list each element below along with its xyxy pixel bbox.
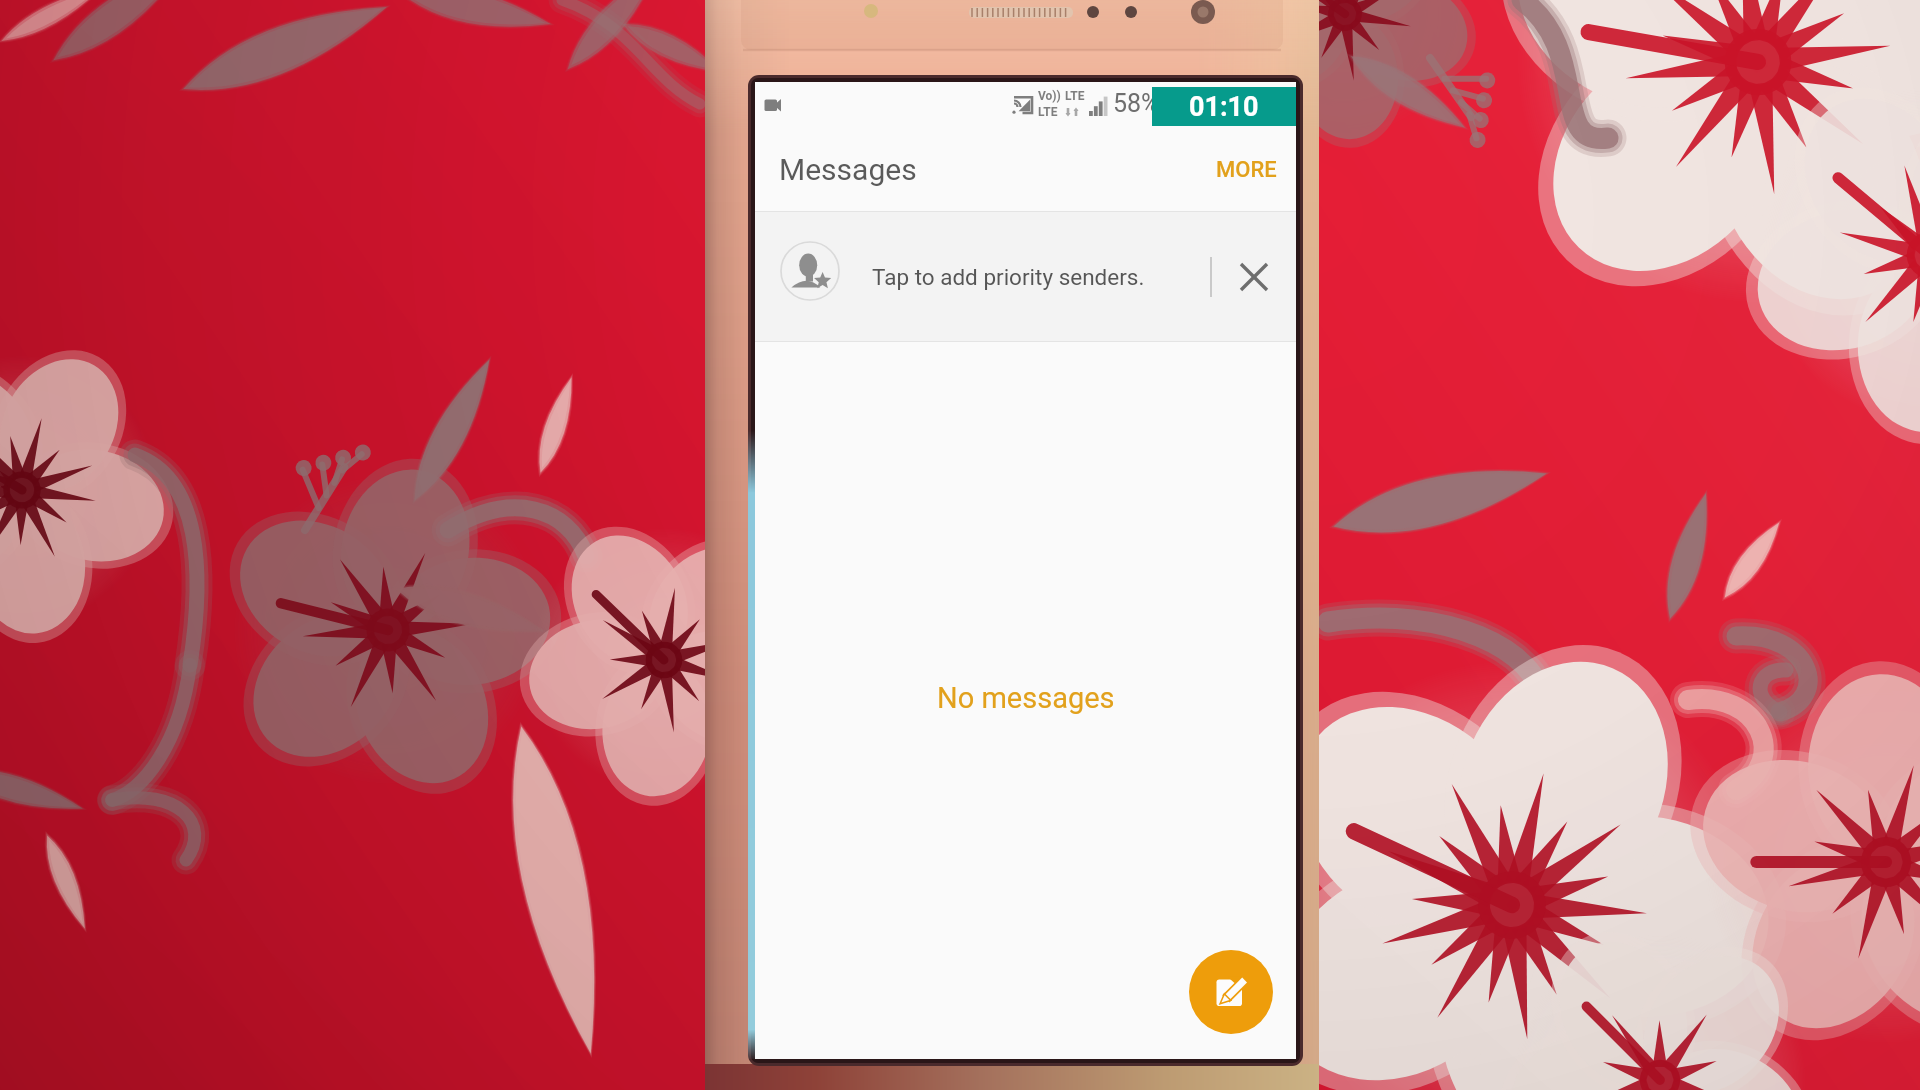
staticText: 58% <box>1113 89 1160 118</box>
staticText: Tap to add priority senders. <box>872 264 1145 290</box>
staticText: Messages <box>779 152 917 187</box>
staticText: Vo)) <box>1038 89 1061 103</box>
staticText: 01:10 <box>1189 91 1259 123</box>
button[interactable]: Dismiss <box>1212 212 1296 341</box>
staticText: LTE <box>1038 105 1058 119</box>
staticText: LTE <box>1065 89 1085 103</box>
button[interactable]: Tap to add priority senders. <box>755 212 1296 341</box>
staticText: No messages <box>937 681 1115 715</box>
staticText: MORE <box>1216 157 1277 183</box>
button[interactable]: Messages <box>755 128 1296 211</box>
button[interactable]: Compose message <box>1189 950 1273 1034</box>
button[interactable]: MORE <box>1204 145 1289 195</box>
